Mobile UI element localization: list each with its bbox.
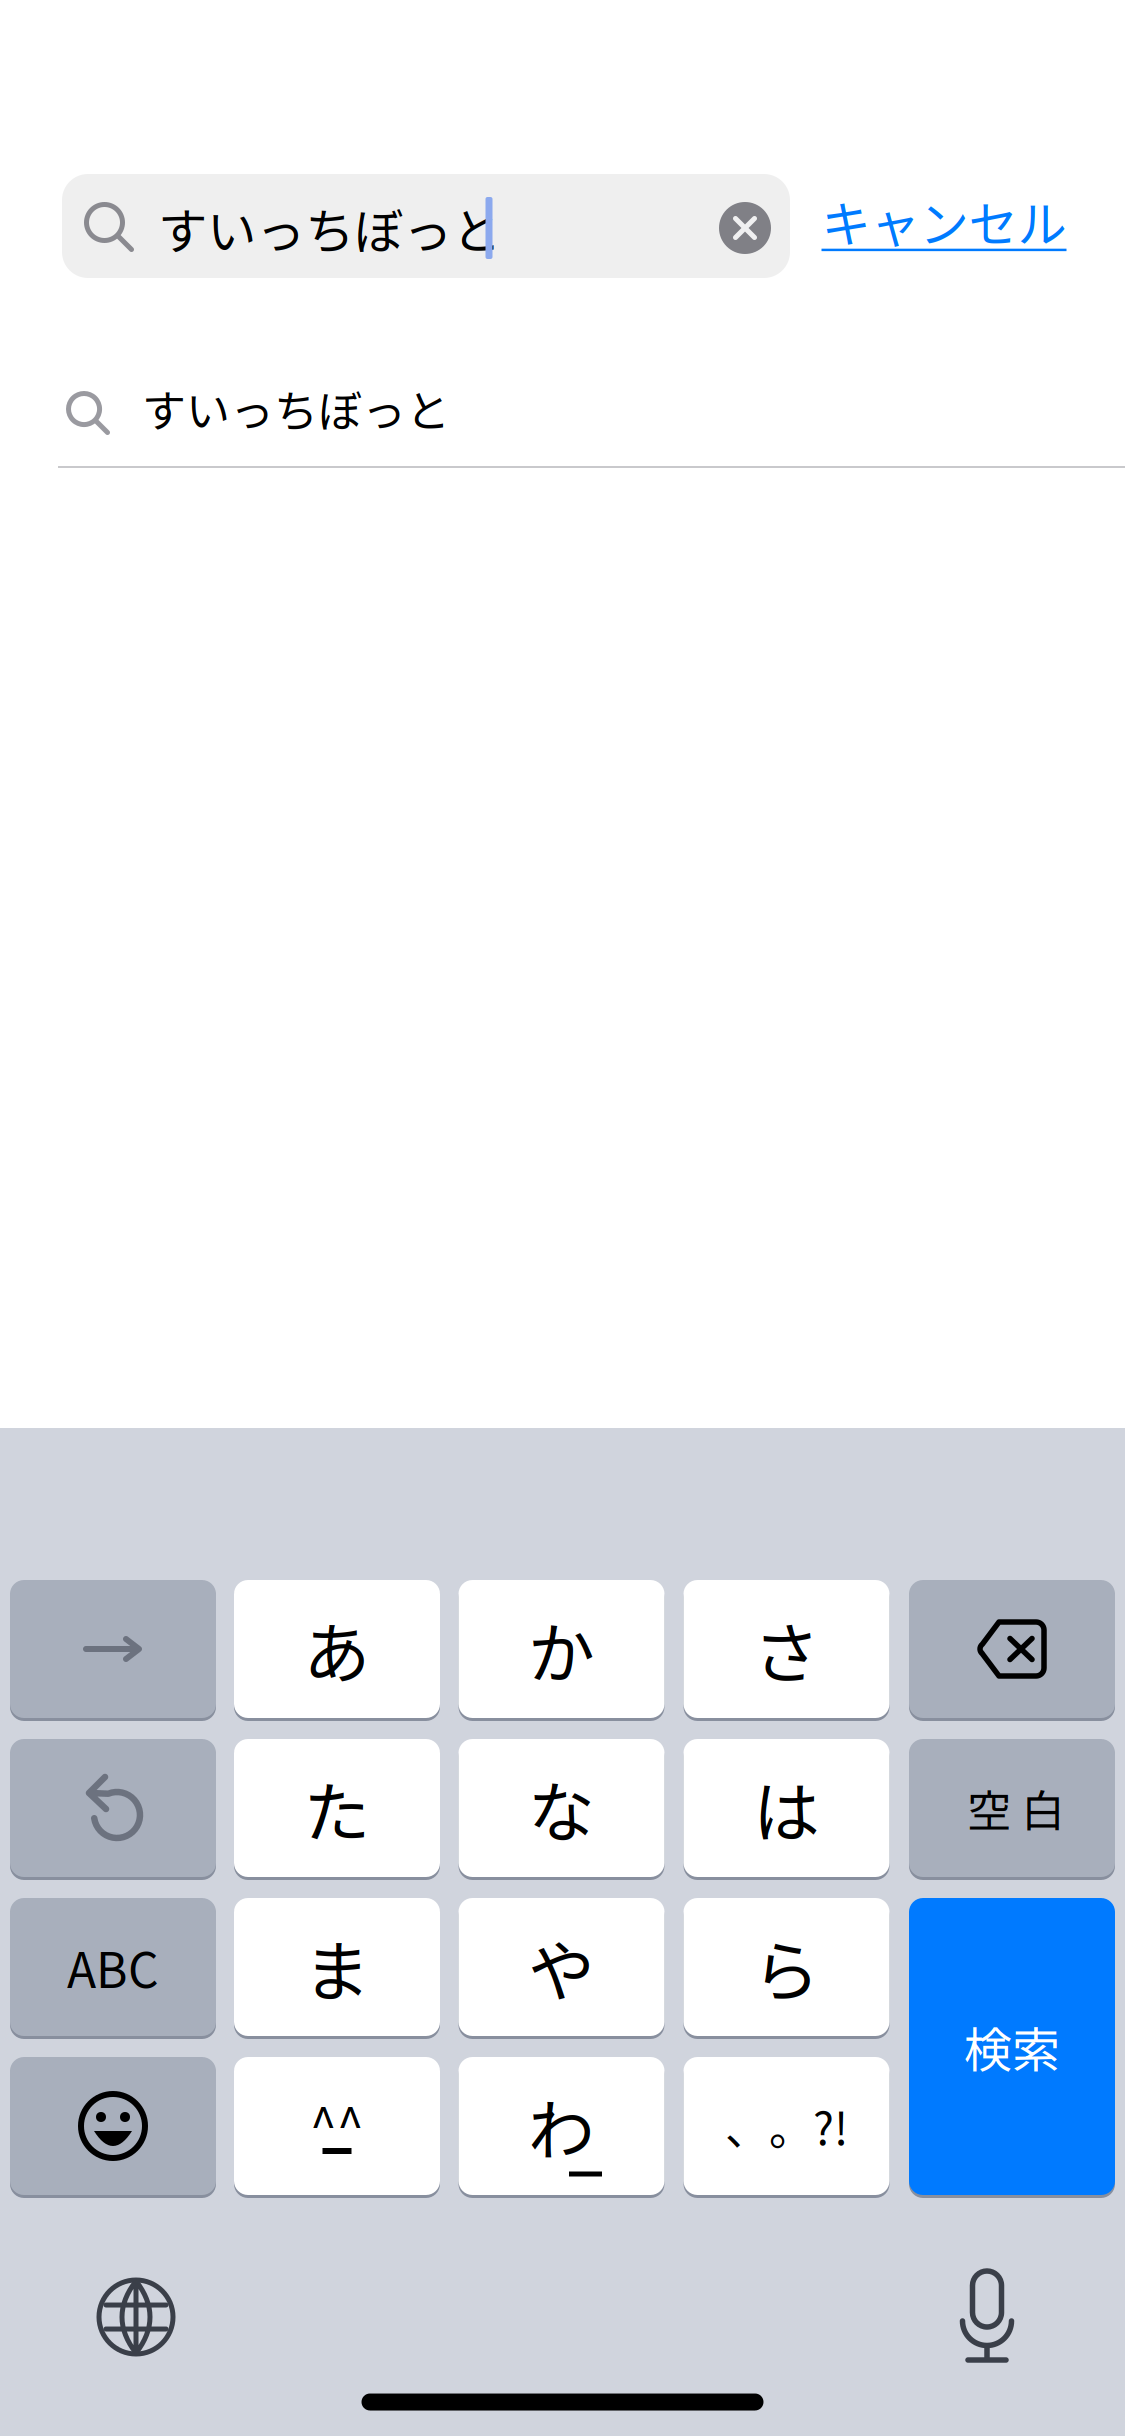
button[interactable]: Dictation [917,2244,1057,2384]
button[interactable]: Undo [10,1736,216,1880]
button[interactable]: ら [683,1895,889,2039]
button[interactable]: た [234,1736,440,1880]
button[interactable]: ABC [10,1895,216,2039]
button[interactable]: あ [234,1577,440,1721]
button[interactable]: Delete [909,1577,1115,1721]
staticText: か [528,1601,595,1697]
staticText: 検索 [964,2012,1060,2081]
staticText: 空 白 [967,1776,1065,1840]
button[interactable]: 検索 [909,1895,1115,2198]
button[interactable]: ま [234,1895,440,2039]
staticText: ら [753,1919,820,2015]
button[interactable]: や [458,1895,664,2039]
button[interactable]: 空 白 [909,1736,1115,1880]
staticText: や [528,1919,595,2015]
button[interactable]: Clear text [702,176,788,280]
staticText: すいっちぼっと [142,376,450,440]
staticText: ABC [67,1932,159,2002]
button[interactable]: な [458,1736,664,1880]
staticText: さ [753,1601,820,1697]
button[interactable]: 、。?! [683,2054,889,2198]
button[interactable]: わ [458,2054,664,2198]
staticText: 、。?! [725,2094,848,2158]
staticText: ま [303,1919,370,2015]
staticText: な [528,1760,595,1856]
staticText: は [753,1760,820,1856]
button[interactable]: キャンセル [794,169,1094,273]
staticText: た [303,1760,370,1856]
button[interactable]: さ [683,1577,889,1721]
staticText: あ [303,1601,370,1697]
button[interactable]: Next keyboard [66,2247,206,2387]
button[interactable]: すいっちぼっと [0,349,1125,467]
staticText: ^^ [310,2087,364,2157]
button[interactable]: Next candidate [10,1577,216,1721]
staticText: キャンセル [821,185,1066,257]
button[interactable]: は [683,1736,889,1880]
staticText: すいっちぼっと [158,192,501,264]
button[interactable]: か [458,1577,664,1721]
button[interactable]: Emoji [10,2054,216,2198]
staticText: わ [528,2078,595,2174]
button[interactable]: ^^ [234,2054,440,2198]
